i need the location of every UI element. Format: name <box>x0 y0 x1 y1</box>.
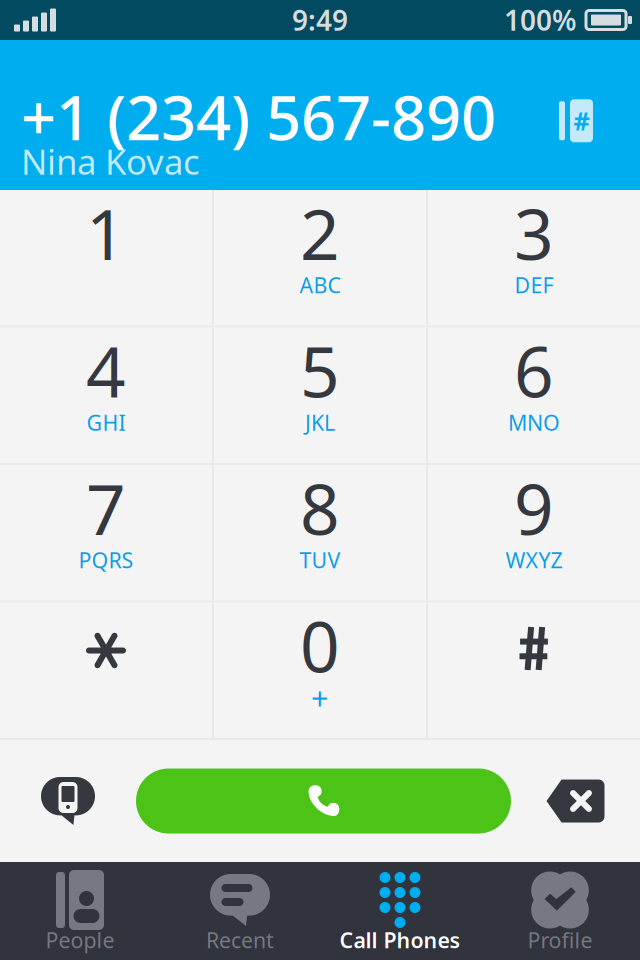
staticText: # <box>573 104 589 137</box>
staticText: TUV <box>299 546 340 574</box>
button[interactable]: Delete <box>511 746 640 856</box>
button[interactable]: 1 <box>0 190 212 325</box>
staticText: People <box>45 926 114 954</box>
staticText: 9:49 <box>292 1 348 39</box>
staticText: 9 <box>514 462 554 554</box>
staticText: PQRS <box>78 546 133 574</box>
staticText: ABC <box>299 271 340 299</box>
button[interactable]: 4 <box>0 327 212 463</box>
button[interactable]: Send SMS <box>0 746 136 856</box>
button[interactable]: 2 <box>214 190 426 325</box>
staticText: 1 <box>86 187 126 279</box>
staticText: 2 <box>300 187 340 279</box>
staticText: GHI <box>86 408 125 437</box>
staticText: Recent <box>206 926 274 954</box>
staticText: + <box>311 677 329 718</box>
staticText: 100% <box>504 1 577 39</box>
staticText: Profile <box>527 926 592 954</box>
button[interactable]: 9 <box>428 465 640 600</box>
staticText: 7 <box>86 462 126 554</box>
staticText: JKL <box>305 408 335 437</box>
button[interactable]: Contacts <box>538 88 614 154</box>
button[interactable]: Call <box>136 768 511 833</box>
button[interactable]: 8 <box>214 465 426 600</box>
staticText: MNO <box>508 408 560 437</box>
staticText: DEF <box>514 271 553 299</box>
staticText: 6 <box>514 324 554 417</box>
staticText: WXYZ <box>505 546 562 574</box>
staticText: 5 <box>300 324 340 417</box>
staticText: 0 <box>300 599 340 692</box>
button[interactable]: 7 <box>0 465 212 600</box>
button[interactable]: Profile <box>480 862 640 960</box>
button[interactable]: People <box>0 862 160 960</box>
button[interactable] <box>0 602 212 738</box>
button[interactable]: Recent <box>160 862 320 960</box>
staticText: 3 <box>514 187 554 279</box>
button[interactable]: 3 <box>428 190 640 325</box>
button[interactable]: Call Phones <box>320 862 480 960</box>
staticText: Nina Kovac <box>21 138 200 184</box>
staticText: 8 <box>300 462 340 554</box>
staticText: 4 <box>86 324 126 417</box>
button[interactable]: 0 <box>214 602 426 738</box>
button[interactable]: 5 <box>214 327 426 463</box>
button[interactable] <box>428 602 640 738</box>
button[interactable]: 6 <box>428 327 640 463</box>
staticText: Call Phones <box>339 926 460 954</box>
staticText: +1 (234) 567-890 <box>21 76 496 157</box>
